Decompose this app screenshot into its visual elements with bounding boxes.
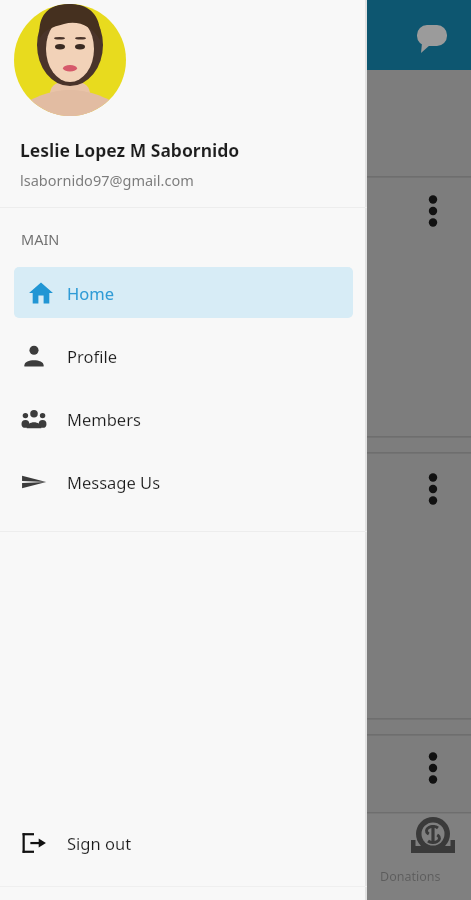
button[interactable]: Members: [0, 393, 367, 444]
staticText: Leslie Lopez M Sabornido: [20, 138, 240, 162]
staticText: Members: [67, 408, 141, 430]
staticText: Donations: [380, 868, 468, 885]
staticText: Home: [67, 282, 114, 304]
staticText: MAIN: [21, 229, 60, 249]
staticText: lsabornido97@gmail.com: [20, 170, 194, 190]
staticText: Message Us: [67, 471, 161, 493]
button[interactable]: Sign out: [0, 815, 367, 871]
staticText: Sign out: [67, 832, 132, 854]
button[interactable]: Donations: [380, 868, 468, 885]
button[interactable]: Home: [14, 267, 353, 318]
staticText: Profile: [67, 345, 117, 367]
button[interactable]: Profile: [0, 330, 367, 381]
button[interactable]: Message Us: [0, 456, 367, 507]
